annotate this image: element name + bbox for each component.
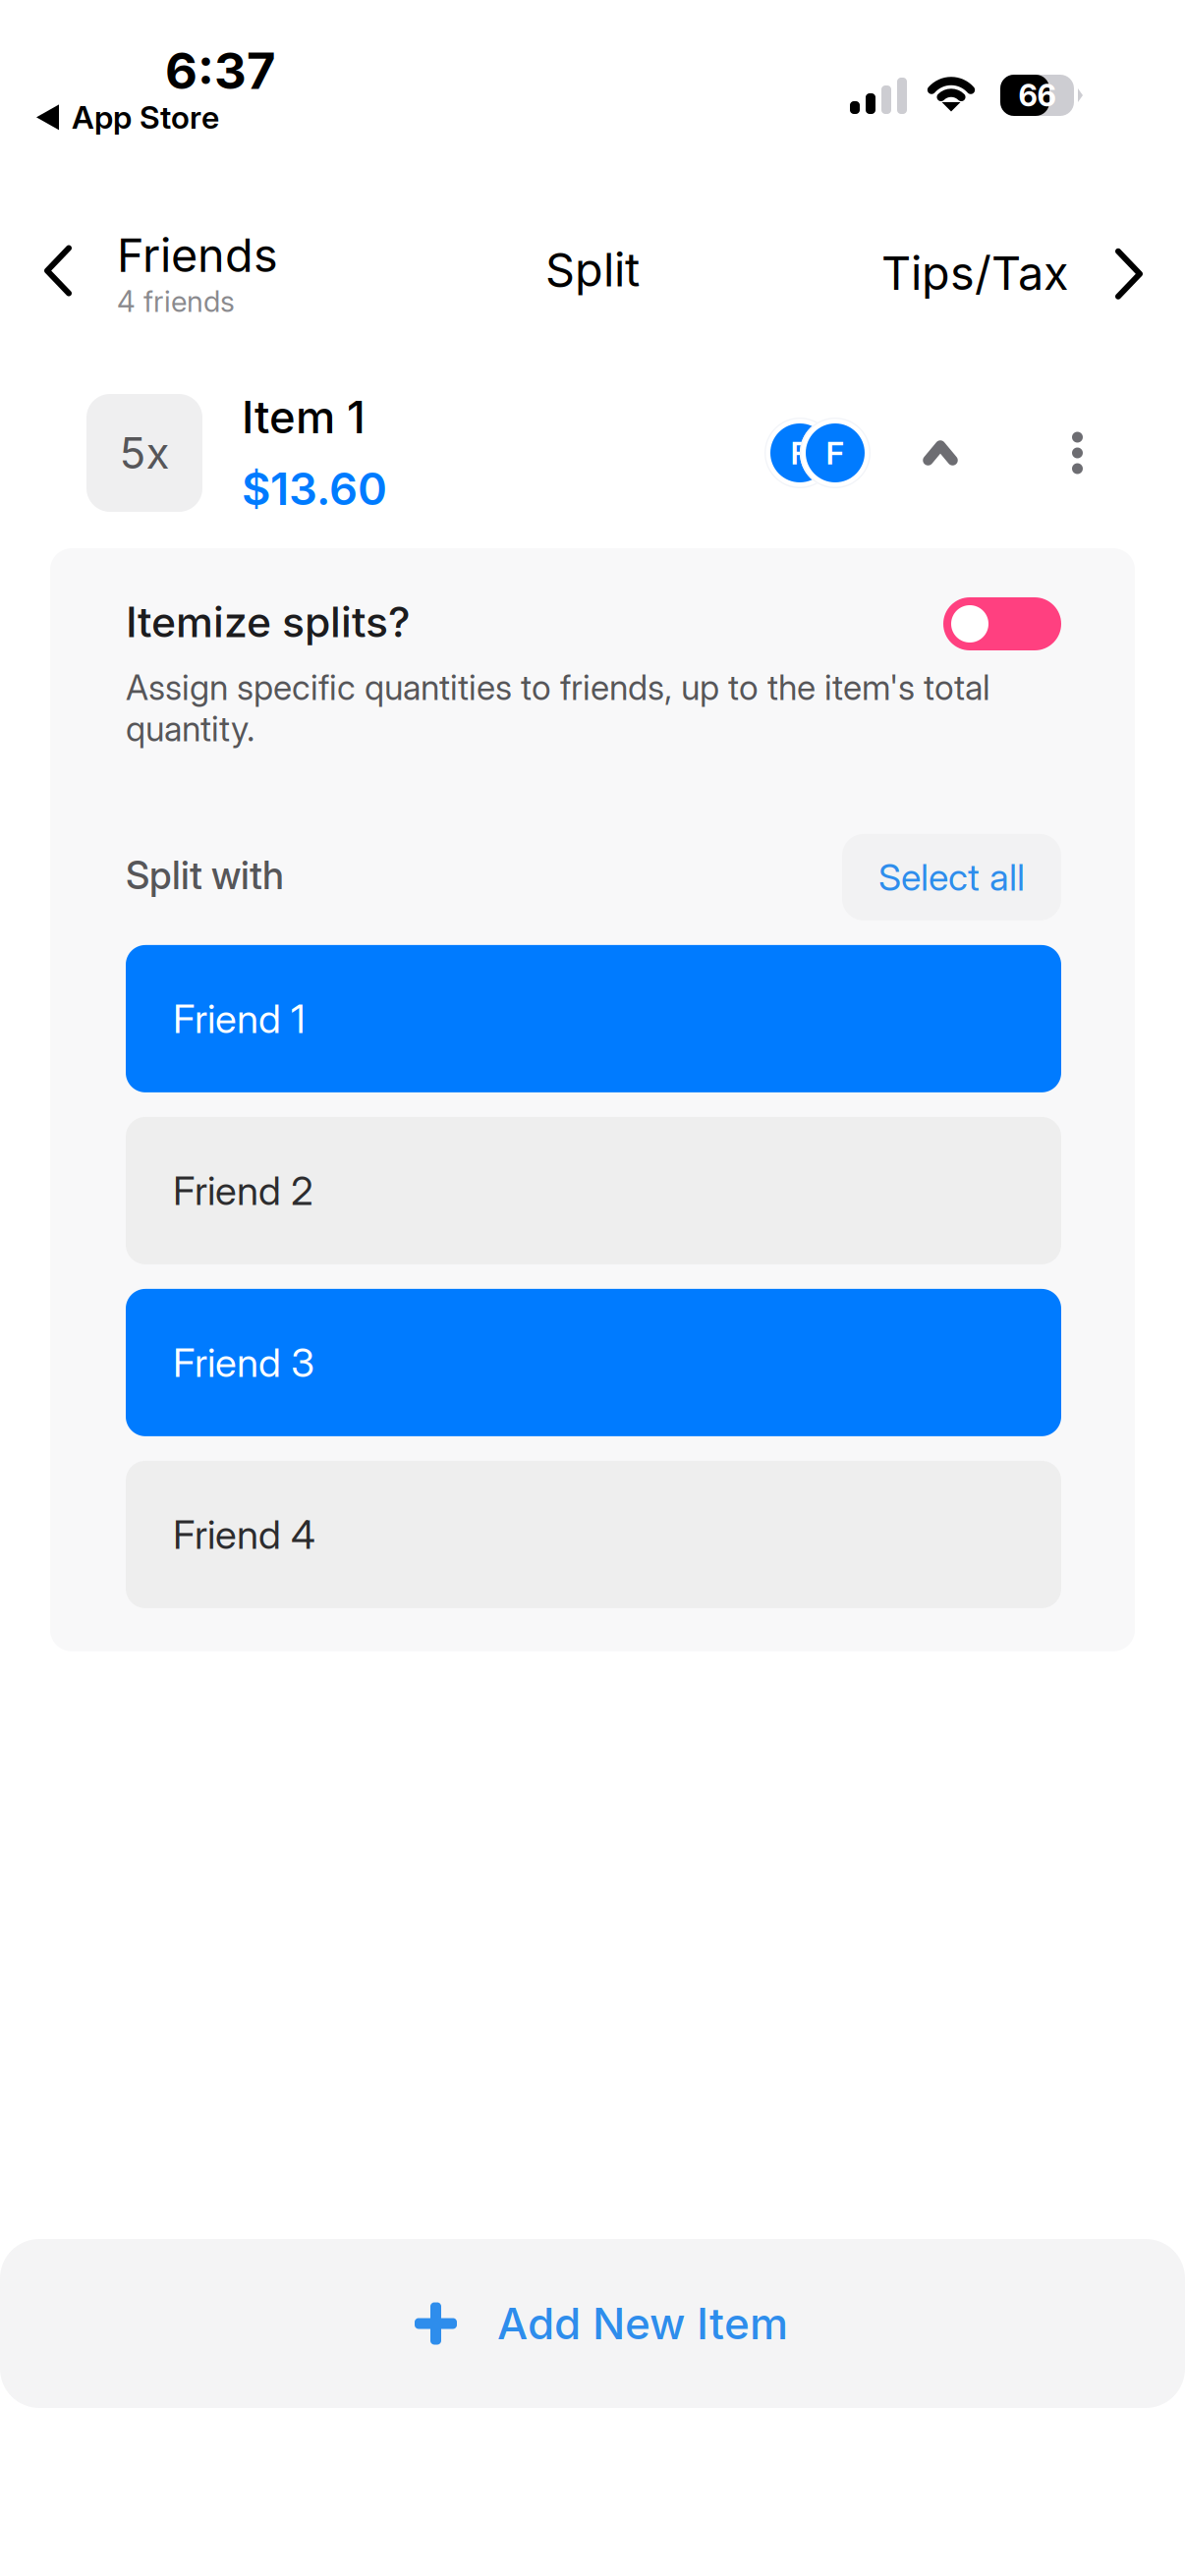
staticText: 66 <box>1018 77 1056 113</box>
staticText: App Store <box>72 98 219 136</box>
button[interactable]: Select all <box>842 834 1061 920</box>
staticText: $13.60 <box>242 462 387 516</box>
staticText: Split <box>545 242 640 297</box>
staticText: 5x <box>119 427 169 479</box>
button[interactable]: Itemize splits <box>943 597 1061 650</box>
staticText: Itemize splits? <box>126 597 411 647</box>
button[interactable]: App Store <box>0 0 219 136</box>
staticText: Add New Item <box>497 2297 788 2350</box>
staticText: Friend 4 <box>173 1511 315 1558</box>
staticText: Friend 1 <box>173 995 306 1042</box>
button[interactable]: Friend 4 <box>126 1461 1061 1608</box>
button[interactable]: Friend 3 <box>126 1289 1061 1436</box>
staticText: 4 friends <box>117 284 235 319</box>
button[interactable]: Add New Item <box>0 2239 1185 2408</box>
staticText: Tips/Tax <box>881 245 1068 301</box>
staticText: F <box>826 434 845 472</box>
button[interactable]: Friend 2 <box>126 1117 1061 1264</box>
button[interactable]: Friend 1 <box>126 945 1061 1092</box>
staticText: Select all <box>878 855 1025 899</box>
button[interactable]: Tips/Tax <box>881 242 1185 301</box>
staticText: Friends <box>117 227 278 283</box>
staticText: Split with <box>126 852 284 898</box>
button[interactable]: More options <box>1045 406 1109 500</box>
staticText: Friend 2 <box>173 1167 313 1214</box>
staticText: 6:37 <box>165 41 275 101</box>
staticText: Item 1 <box>242 390 366 444</box>
staticText: Friend 3 <box>173 1339 314 1386</box>
staticText: F <box>790 434 809 472</box>
button[interactable]: Collapse item <box>899 407 982 499</box>
button[interactable]: Friends <box>0 224 278 319</box>
staticText: Assign specific quantities to friends, u… <box>126 667 990 750</box>
